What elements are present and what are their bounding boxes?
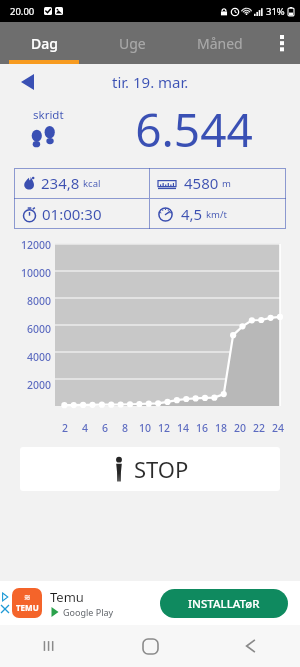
staticText: 01:00:30 bbox=[42, 204, 102, 224]
staticText: 20.00 bbox=[10, 5, 35, 18]
staticText: 4000 bbox=[27, 350, 52, 364]
staticText: Temu bbox=[50, 588, 84, 606]
staticText: 6 bbox=[102, 421, 109, 435]
staticText: 8000 bbox=[27, 294, 52, 308]
staticText: 22 bbox=[253, 421, 266, 435]
staticText: 6.544 bbox=[96, 98, 292, 161]
staticText: TEMU bbox=[16, 602, 39, 613]
staticText: 18 bbox=[215, 421, 228, 435]
staticText: Uge bbox=[119, 34, 146, 53]
staticText: tir. 19. mar. bbox=[112, 72, 189, 92]
staticText: kcal bbox=[83, 177, 101, 190]
staticText: Google Play bbox=[63, 606, 114, 618]
staticText: 4580 bbox=[184, 173, 219, 193]
button[interactable]: More options bbox=[264, 22, 300, 64]
staticText: km/t bbox=[206, 208, 227, 221]
button[interactable]: Uge bbox=[88, 22, 176, 64]
staticText: INSTALLATøR bbox=[188, 596, 260, 612]
staticText: 10 bbox=[139, 421, 152, 435]
button[interactable]: 4,5 bbox=[150, 199, 286, 229]
button[interactable]: Måned bbox=[176, 22, 264, 64]
staticText: 12 bbox=[158, 421, 171, 435]
staticText: 2000 bbox=[27, 378, 52, 392]
button[interactable]: INSTALLATøR bbox=[160, 589, 288, 618]
button[interactable]: Recent apps bbox=[0, 625, 100, 667]
button[interactable]: Home bbox=[100, 625, 200, 667]
staticText: 4 bbox=[82, 421, 89, 435]
button[interactable]: 234,8 bbox=[14, 168, 149, 198]
button[interactable]: Back bbox=[200, 625, 300, 667]
staticText: Dag bbox=[31, 34, 58, 53]
staticText: 234,8 bbox=[41, 173, 80, 193]
staticText: 10000 bbox=[21, 266, 52, 280]
staticText: STOP bbox=[134, 454, 189, 484]
staticText: 16 bbox=[196, 421, 209, 435]
staticText: 6000 bbox=[27, 322, 52, 336]
staticText: Måned bbox=[197, 34, 243, 53]
button[interactable]: 01:00:30 bbox=[14, 199, 149, 229]
staticText: 4,5 bbox=[181, 204, 203, 224]
staticText: ≋ bbox=[24, 593, 31, 602]
staticText: 24 bbox=[272, 421, 285, 435]
staticText: 2 bbox=[62, 421, 69, 435]
staticText: 8 bbox=[122, 421, 129, 435]
button[interactable]: Dag bbox=[0, 22, 88, 64]
button[interactable]: STOP bbox=[20, 447, 280, 491]
staticText: 14 bbox=[177, 421, 190, 435]
staticText: 31% bbox=[266, 5, 285, 18]
staticText: m bbox=[222, 177, 231, 190]
button[interactable]: Previous day bbox=[14, 69, 40, 95]
staticText: 12000 bbox=[21, 238, 52, 252]
staticText: skridt bbox=[33, 107, 64, 123]
button[interactable]: 4580 bbox=[150, 168, 286, 198]
staticText: 20 bbox=[234, 421, 247, 435]
